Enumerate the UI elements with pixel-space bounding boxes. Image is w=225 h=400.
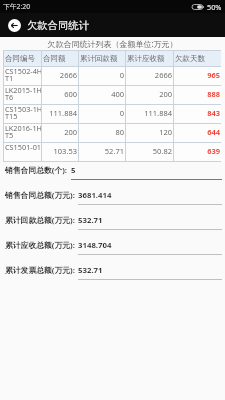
staticText: 200 — [159, 89, 172, 99]
staticText: 累计回款总额(万元): — [5, 215, 75, 226]
staticText: LK2016-1H T5 — [5, 123, 41, 140]
staticText: 52.71 — [104, 146, 124, 156]
staticText: 0 — [119, 108, 124, 118]
staticText: 103.53 — [53, 146, 77, 156]
staticText: CS1501-01 — [5, 142, 41, 152]
staticText: 2666 — [154, 70, 172, 80]
staticText: 5 — [71, 165, 76, 176]
staticText: 532.71 — [78, 265, 103, 276]
staticText: 累计回款额 — [80, 54, 118, 63]
staticText: 600 — [64, 89, 77, 99]
staticText: LK2015-1H T6 — [5, 85, 41, 102]
staticText: 644 — [207, 127, 220, 137]
staticText: 120 — [159, 127, 172, 137]
staticText: 50.82 — [152, 146, 172, 156]
button[interactable]: 返回 — [2, 13, 27, 37]
staticText: 0 — [119, 70, 124, 80]
staticText: 销售合同总数(个): — [5, 165, 68, 176]
staticText: CS1502-4H T1 — [5, 66, 41, 83]
staticText: 欠款合同统计 — [27, 19, 89, 32]
staticText: 累计应收额 — [127, 54, 165, 63]
staticText: 下午2:20 — [3, 2, 31, 11]
staticText: 843 — [207, 108, 220, 118]
staticText: 累计发票总额(万元): — [5, 265, 75, 276]
staticText: 3681.414 — [78, 190, 112, 201]
staticText: 3148.704 — [78, 240, 112, 251]
staticText: 400 — [111, 89, 124, 99]
staticText: 80 — [115, 127, 124, 137]
staticText: CS1503-1H T15 — [5, 104, 41, 121]
staticText: 111.884 — [144, 108, 172, 118]
staticText: 965 — [207, 70, 220, 80]
staticText: 2666 — [59, 70, 77, 80]
staticText: 111.884 — [49, 108, 77, 118]
staticText: 50% — [207, 2, 222, 12]
staticText: 欠款合同统计列表（金额单位:万元） — [0, 38, 225, 49]
staticText: 合同编号 — [5, 54, 35, 63]
staticText: 532.71 — [78, 215, 103, 226]
staticText: 欠款天数 — [175, 54, 205, 63]
staticText: 639 — [207, 146, 220, 156]
staticText: 888 — [207, 89, 220, 99]
staticText: 200 — [64, 127, 77, 137]
staticText: 合同额 — [43, 54, 66, 63]
staticText: 销售合同总额(万元): — [5, 190, 75, 201]
staticText: 累计应收总额(万元): — [5, 240, 75, 251]
